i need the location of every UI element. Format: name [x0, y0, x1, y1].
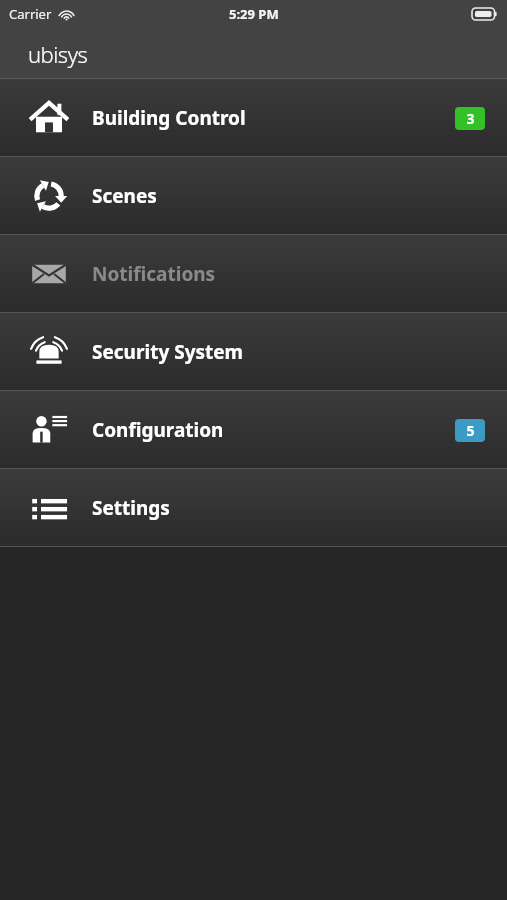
staticText: Security System — [92, 339, 244, 365]
staticText: Building Control — [92, 105, 246, 131]
staticText: 3 — [466, 109, 475, 128]
button[interactable]: Settings — [0, 469, 507, 547]
staticText: Notifications — [92, 261, 216, 287]
button[interactable]: Scenes — [0, 157, 507, 235]
staticText: 5 — [466, 421, 475, 440]
staticText: Carrier — [9, 5, 52, 23]
staticText: Configuration — [92, 417, 224, 443]
button[interactable]: Building Control — [0, 79, 507, 157]
staticText: ubisys — [28, 39, 88, 69]
staticText: Settings — [92, 495, 170, 521]
staticText: Scenes — [92, 183, 157, 209]
staticText: 5:29 PM — [229, 5, 279, 23]
button[interactable]: Configuration — [0, 391, 507, 469]
button[interactable]: Notifications — [0, 235, 507, 313]
button[interactable]: Security System — [0, 313, 507, 391]
